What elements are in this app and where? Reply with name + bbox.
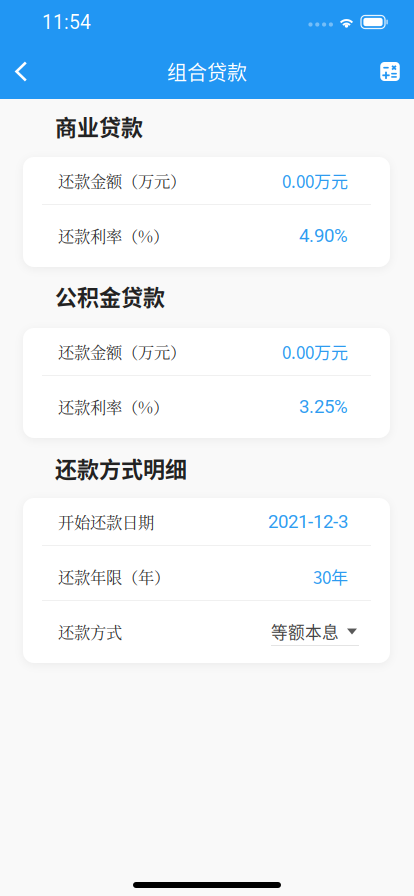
staticText: 还款年限（年）	[58, 565, 170, 588]
staticText: 还款方式明细	[55, 452, 187, 484]
button[interactable]: Calculator	[369, 44, 411, 99]
staticText: 3.25%	[299, 396, 348, 417]
staticText: 11:54	[42, 11, 91, 34]
staticText: 还款金额（万元）	[58, 340, 186, 363]
staticText: 4.90%	[299, 225, 348, 246]
staticText: 开始还款日期	[58, 510, 154, 533]
staticText: 组合贷款	[167, 57, 247, 86]
staticText: 2021-12-3	[268, 511, 348, 532]
staticText: 还款方式	[58, 620, 122, 643]
staticText: 还款利率（%）	[58, 395, 169, 418]
button[interactable]: 还款方式	[23, 608, 390, 663]
staticText: 等额本息	[271, 619, 339, 643]
staticText: 商业贷款	[55, 110, 143, 142]
staticText: 还款金额（万元）	[58, 169, 186, 192]
staticText: 公积金贷款	[55, 280, 165, 312]
staticText: 还款利率（%）	[58, 224, 169, 247]
staticText: 30年	[313, 564, 348, 589]
staticText: 0.00万元	[282, 168, 348, 193]
staticText: 0.00万元	[282, 339, 348, 364]
button[interactable]: Back	[0, 44, 42, 99]
